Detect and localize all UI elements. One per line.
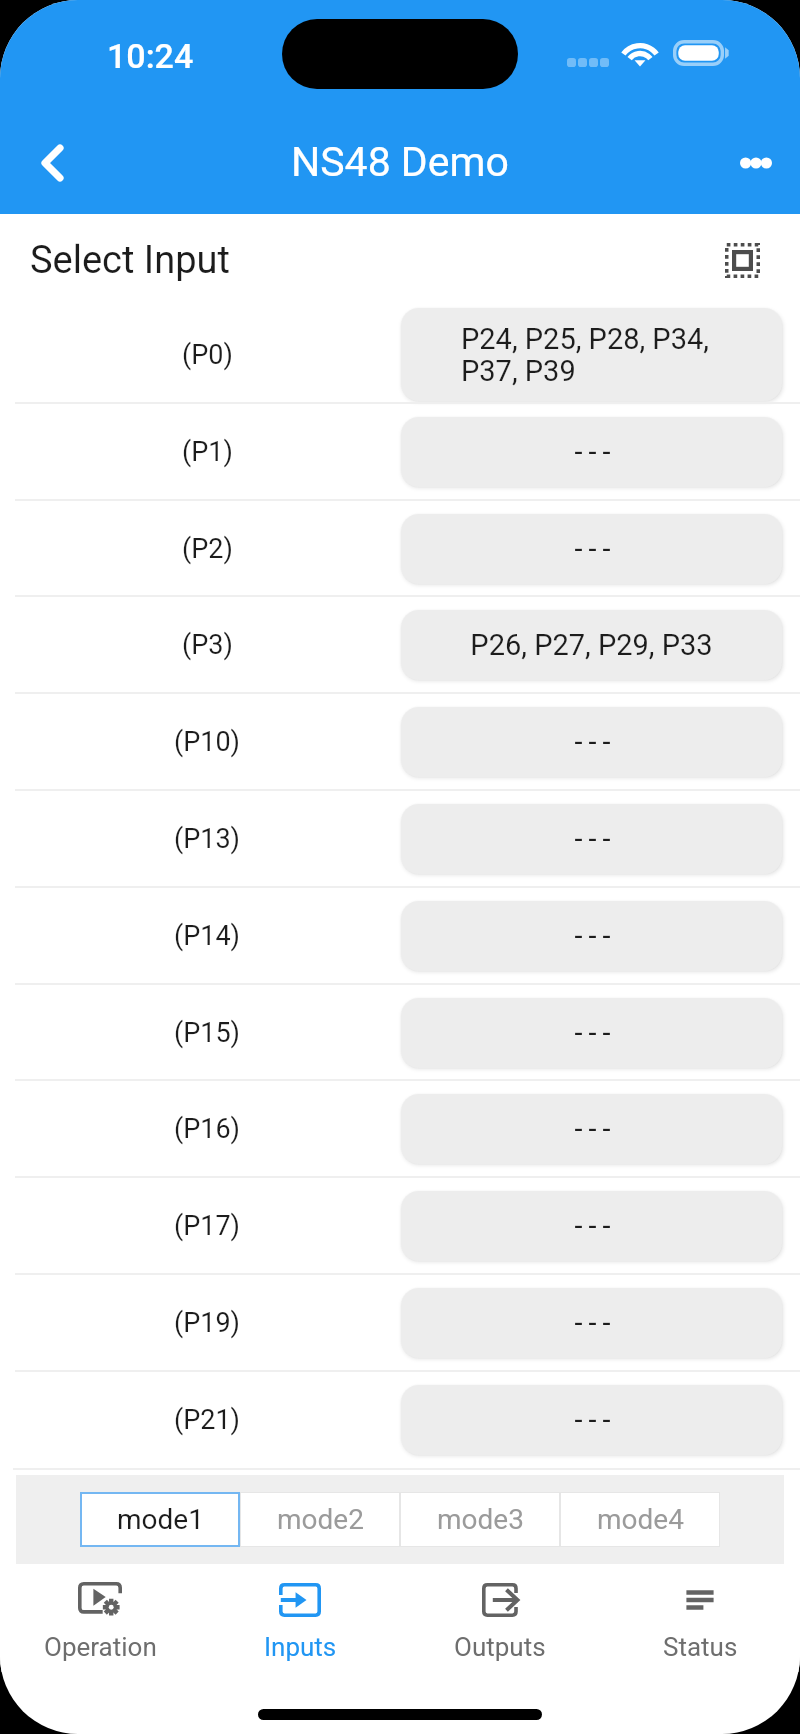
staticText: (P0) — [182, 339, 233, 371]
staticText: mode4 — [597, 1503, 684, 1536]
staticText: P24, P25, P28, P34, P37, P39 — [461, 322, 709, 388]
staticText: (P19) — [174, 1307, 241, 1339]
staticText: mode2 — [277, 1503, 364, 1536]
staticText: Inputs — [264, 1632, 337, 1662]
button[interactable]: (P13) — [0, 790, 800, 887]
staticText: --- — [574, 532, 617, 566]
button[interactable]: Outputs — [400, 1564, 600, 1672]
button[interactable]: (P17) — [0, 1177, 800, 1274]
button[interactable]: (P19) — [0, 1274, 800, 1371]
staticText: --- — [574, 1112, 617, 1146]
staticText: 10:24 — [107, 36, 194, 76]
staticText: (P15) — [174, 1017, 241, 1049]
staticText: mode3 — [437, 1503, 524, 1536]
button[interactable]: Inputs — [200, 1564, 400, 1672]
staticText: --- — [574, 725, 617, 759]
button[interactable]: Status — [600, 1564, 800, 1672]
staticText: (P16) — [174, 1113, 241, 1145]
button[interactable]: (P0) — [0, 306, 800, 403]
button[interactable]: (P21) — [0, 1371, 800, 1468]
staticText: (P14) — [174, 920, 241, 952]
button[interactable]: (P2) — [0, 500, 800, 597]
button[interactable]: (P10) — [0, 693, 800, 790]
staticText: Outputs — [454, 1632, 546, 1662]
button[interactable]: (P15) — [0, 984, 800, 1081]
button[interactable]: mode1 — [80, 1492, 240, 1547]
staticText: P26, P27, P29, P33 — [470, 628, 713, 662]
button[interactable]: (P1) — [0, 403, 800, 500]
button[interactable]: Select all — [711, 229, 773, 291]
staticText: mode1 — [117, 1503, 204, 1536]
staticText: (P13) — [174, 823, 241, 855]
button[interactable]: mode4 — [560, 1492, 720, 1547]
staticText: (P3) — [182, 629, 233, 661]
button[interactable]: (P16) — [0, 1080, 800, 1177]
staticText: (P1) — [182, 436, 233, 468]
staticText: (P21) — [174, 1404, 241, 1436]
staticText: (P17) — [174, 1210, 241, 1242]
button[interactable]: mode3 — [400, 1492, 560, 1547]
button[interactable]: More options — [724, 131, 788, 195]
staticText: --- — [574, 435, 617, 469]
button[interactable]: Back — [20, 131, 84, 195]
staticText: (P2) — [182, 533, 233, 565]
staticText: Operation — [44, 1632, 157, 1662]
staticText: --- — [574, 1209, 617, 1243]
staticText: Status — [663, 1632, 738, 1662]
staticText: Select Input — [30, 238, 230, 283]
staticText: --- — [574, 919, 617, 953]
staticText: --- — [574, 822, 617, 856]
button[interactable]: (P14) — [0, 887, 800, 984]
staticText: (P10) — [174, 726, 241, 758]
button[interactable]: Operation — [0, 1564, 200, 1672]
button[interactable]: (P3) — [0, 596, 800, 693]
staticText: --- — [574, 1016, 617, 1050]
staticText: NS48 Demo — [291, 138, 509, 186]
button[interactable]: mode2 — [240, 1492, 400, 1547]
staticText: --- — [574, 1306, 617, 1340]
staticText: --- — [574, 1403, 617, 1437]
